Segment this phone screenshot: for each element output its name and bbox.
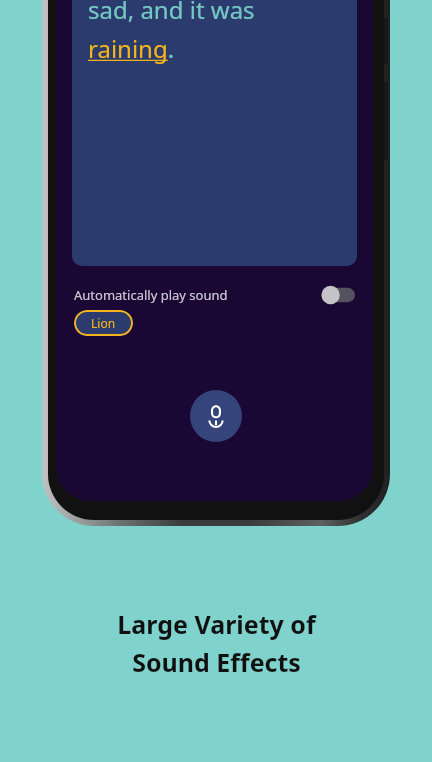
- button[interactable]: Record with microphone: [190, 390, 242, 442]
- staticText: sad, and it was: [88, 0, 255, 26]
- staticText: Lion: [91, 315, 116, 331]
- button[interactable]: Lion: [74, 310, 133, 336]
- button[interactable]: Automatically play sound toggle: [321, 285, 355, 305]
- staticText: Sound Effects: [132, 645, 301, 679]
- staticText: Automatically play sound: [74, 286, 228, 304]
- button[interactable]: Automatically play sound: [56, 278, 373, 312]
- staticText: raining.: [88, 32, 175, 65]
- staticText: Large Variety of: [117, 607, 316, 641]
